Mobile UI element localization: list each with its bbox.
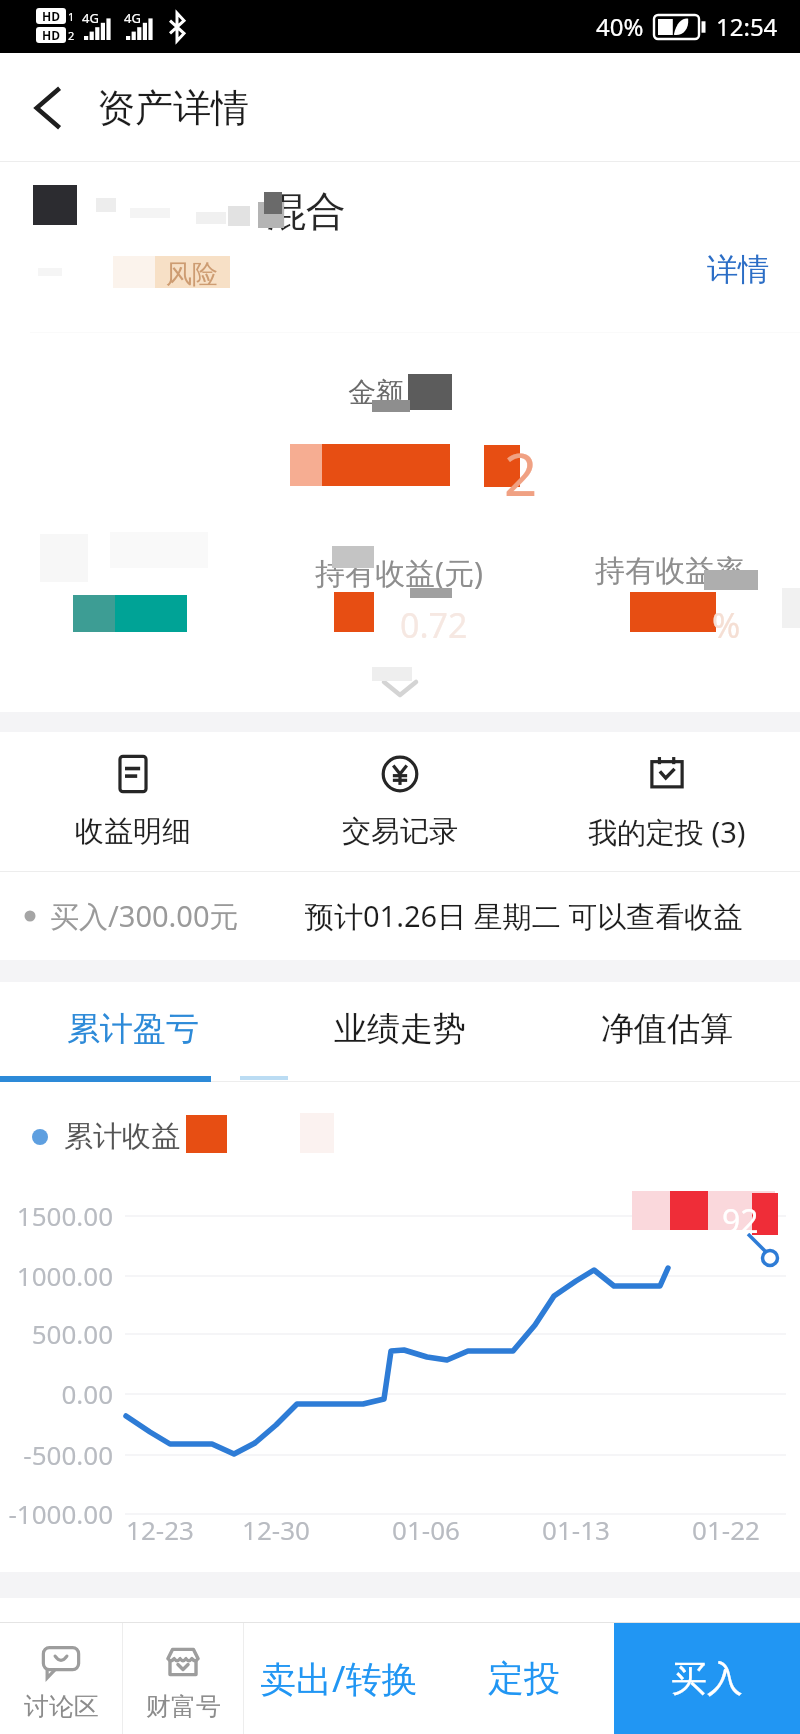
button[interactable]: Expand [382,680,418,698]
staticText: % [712,602,741,648]
button[interactable]: 买入 [614,1623,800,1734]
button[interactable]: 收益明细 [0,732,266,871]
staticText: 交易记录 [342,813,458,850]
staticText: 4G [82,9,99,27]
staticText: 40% [596,10,644,43]
staticText: 持有收益率 [595,552,745,590]
staticText: -1000.00 [0,1496,113,1531]
staticText: 1000.00 [0,1258,113,1293]
staticText: 我的定投 (3) [588,812,746,852]
button[interactable]: 详情 [688,240,788,298]
staticText: 混合 [266,186,346,236]
staticText: 01-06 [366,1512,486,1547]
staticText: 12-23 [100,1512,220,1547]
staticText: 业绩走势 [334,1008,466,1050]
staticText: 12-30 [216,1512,336,1547]
staticText: 资产详情 [97,84,249,132]
staticText: 讨论区 [24,1691,99,1722]
staticText: HD [42,8,60,24]
staticText: 详情 [707,250,769,289]
staticText: 风险 [166,258,218,291]
staticText: 1 [68,9,75,24]
button[interactable]: 卖出/转换 [244,1623,433,1734]
staticText: 01-22 [666,1512,786,1547]
button[interactable]: Back [16,75,82,141]
staticText: 4G [124,9,141,27]
staticText: 0.00 [0,1376,113,1411]
button[interactable]: 我的定投 (3) [533,732,800,871]
button[interactable]: 累计盈亏 [0,982,266,1076]
staticText: 2 [68,28,75,43]
staticText: 0.72 [400,602,468,648]
button[interactable]: 定投 [433,1623,614,1734]
staticText: 预计01.26日 星期二 可以查看收益 [305,896,743,936]
button[interactable]: 财富号 [123,1623,243,1734]
staticText: 金额 [348,375,404,410]
staticText: 1500.00 [0,1198,113,1233]
button[interactable]: 业绩走势 [266,982,533,1076]
staticText: 累计盈亏 [67,1008,199,1050]
staticText: 定投 [488,1656,560,1701]
button[interactable]: 买入/300.00元 [0,872,800,960]
staticText: 收益明细 [75,813,191,850]
staticText: 92 [722,1199,759,1243]
staticText: -500.00 [0,1437,113,1472]
staticText: 买入/300.00元 [50,896,239,936]
staticText: 买入 [671,1656,743,1701]
staticText: 2 [504,434,538,513]
button[interactable]: 交易记录 [266,732,533,871]
staticText: 累计收益 [64,1118,180,1155]
staticText: 01-13 [516,1512,636,1547]
staticText: 持有收益(元) [315,552,483,593]
staticText: HD [42,27,60,43]
staticText: 12:54 [716,10,778,43]
staticText: 500.00 [0,1316,113,1351]
staticText: 财富号 [146,1691,221,1722]
button[interactable]: 净值估算 [533,982,800,1076]
staticText: 净值估算 [601,1008,733,1050]
button[interactable]: 讨论区 [0,1623,122,1734]
staticText: 卖出/转换 [260,1654,418,1703]
